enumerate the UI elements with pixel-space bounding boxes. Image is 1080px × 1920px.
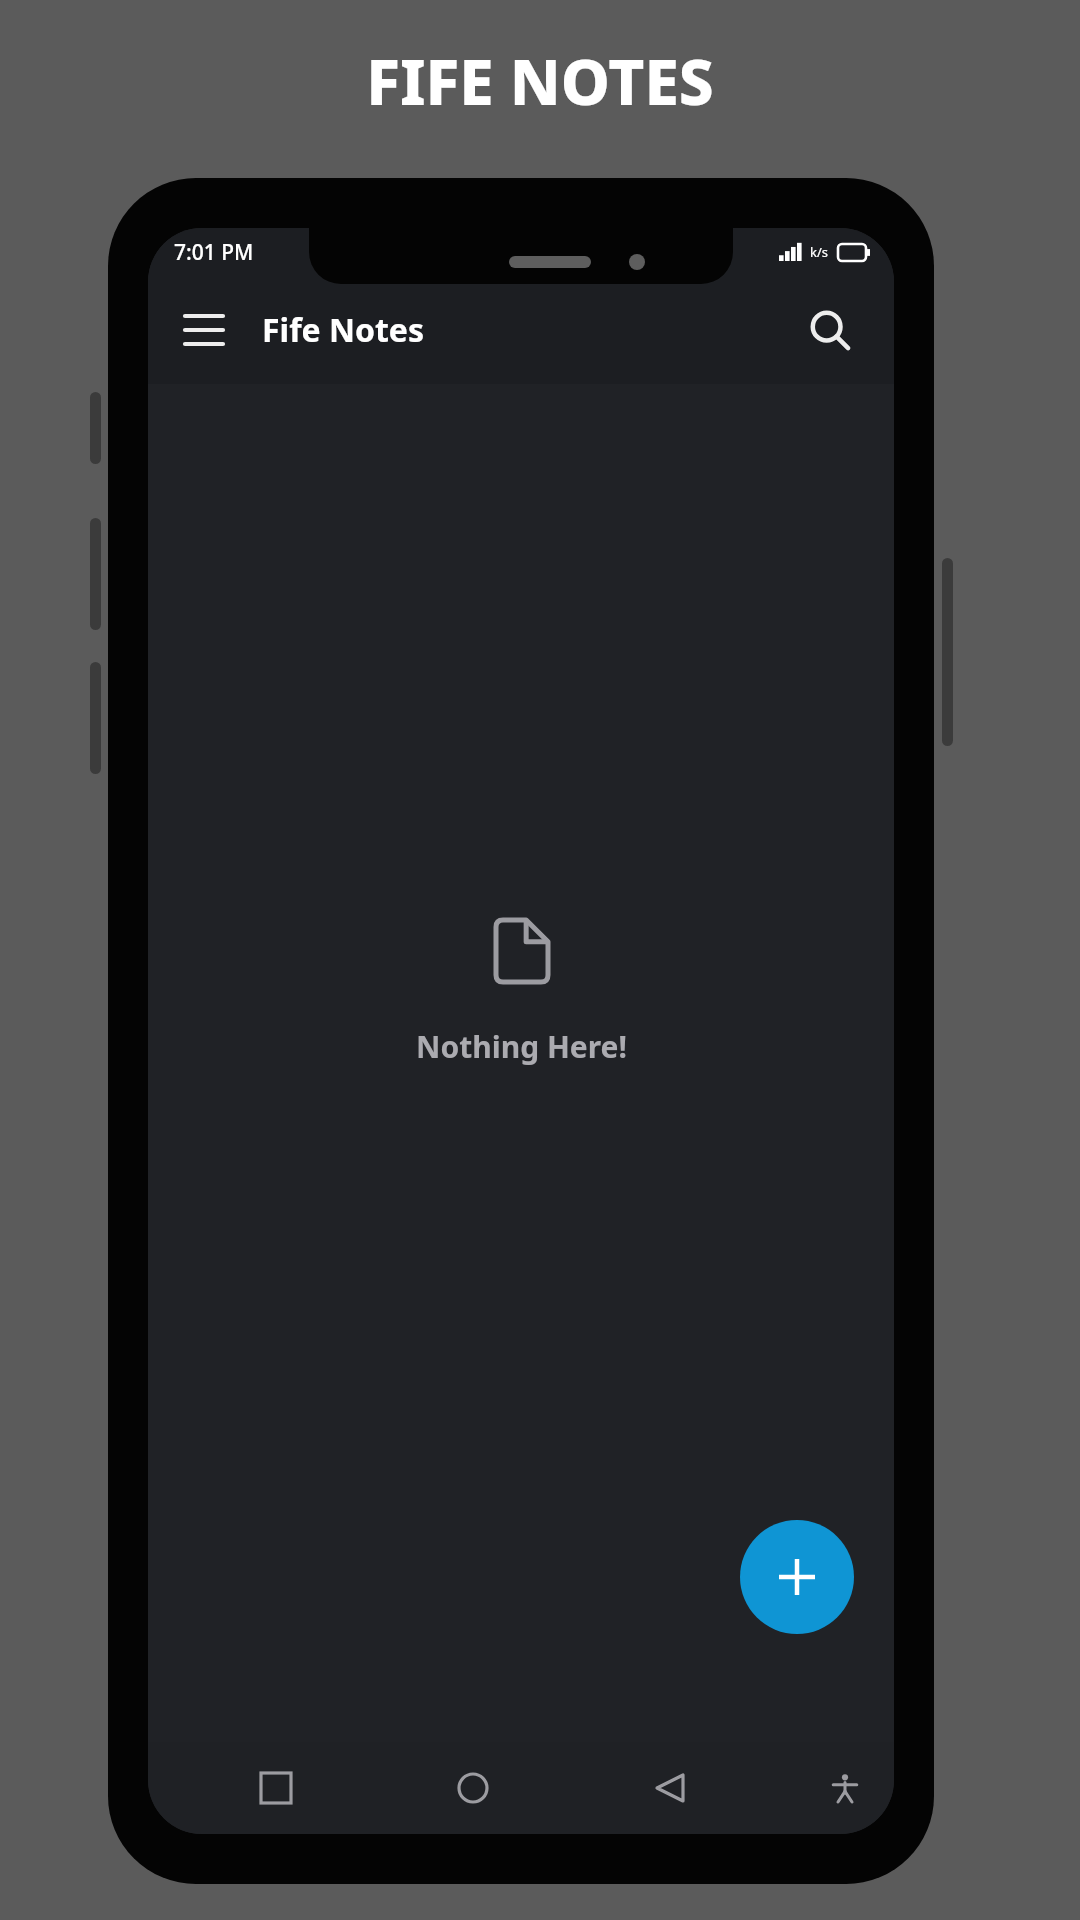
button[interactable]: Menu xyxy=(168,294,240,366)
button[interactable]: Search xyxy=(792,292,868,368)
staticText: 7:01 PM xyxy=(174,238,254,267)
button[interactable]: Add note xyxy=(740,1520,854,1634)
button[interactable]: Recents xyxy=(238,1750,314,1826)
button[interactable]: Accessibility xyxy=(810,1753,880,1823)
staticText: Nothing Here! xyxy=(416,1026,627,1067)
staticText: Fife Notes xyxy=(262,308,425,352)
staticText: k/s xyxy=(810,243,829,261)
staticText: FIFE NOTES xyxy=(366,39,714,123)
button[interactable]: Home xyxy=(435,1750,511,1826)
button[interactable]: Back xyxy=(632,1750,708,1826)
